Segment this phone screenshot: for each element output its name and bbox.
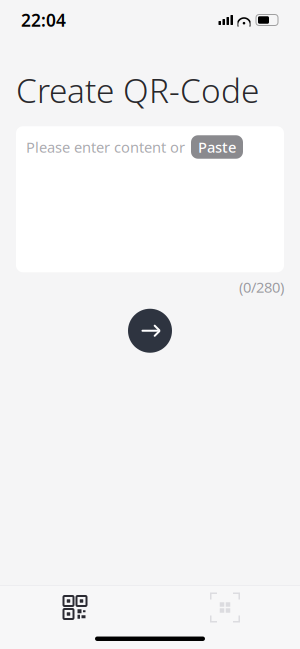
staticText: 22:04 — [21, 8, 66, 31]
button[interactable]: Create QR code — [0, 585, 150, 629]
button[interactable]: Paste — [191, 135, 243, 159]
button[interactable]: Scan QR code — [150, 585, 300, 629]
staticText: Create QR-Code — [16, 68, 259, 112]
staticText: (0/280) — [239, 277, 284, 297]
staticText: Paste — [198, 137, 236, 157]
button[interactable]: Generate QR code — [128, 309, 172, 353]
staticText: Please enter content or — [26, 137, 185, 157]
